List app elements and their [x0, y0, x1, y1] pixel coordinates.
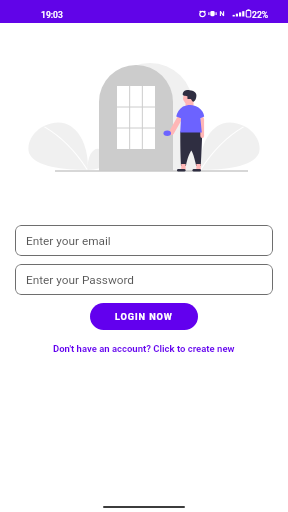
button[interactable]: Enter your email [15, 225, 273, 256]
staticText: Don't have an account? Click to create n… [53, 343, 235, 354]
staticText: 22% [252, 10, 269, 20]
button[interactable]: LOGIN NOW [90, 303, 198, 330]
staticText: 19:03 [41, 10, 63, 20]
button[interactable]: Don't have an account? Click to create n… [0, 339, 288, 357]
staticText: Enter your email [26, 234, 111, 248]
staticText: LOGIN NOW [115, 311, 173, 322]
button[interactable]: Enter your Password [15, 264, 273, 295]
staticText: Enter your Password [26, 273, 135, 287]
